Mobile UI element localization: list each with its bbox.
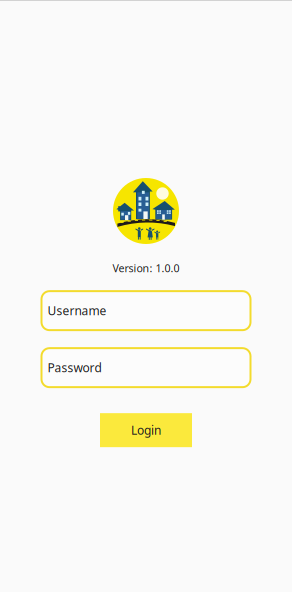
- staticText: Username: [47, 303, 106, 319]
- button[interactable]: Login: [100, 413, 192, 447]
- button[interactable]: Password: [41, 348, 250, 387]
- staticText: Version: 1.0.0: [112, 261, 179, 275]
- staticText: Login: [131, 422, 161, 438]
- staticText: Password: [47, 360, 101, 376]
- button[interactable]: Username: [41, 291, 250, 330]
